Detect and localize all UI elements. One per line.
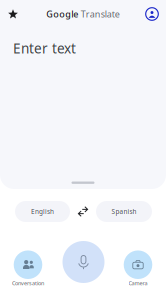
button[interactable]: Swap languages <box>70 201 96 222</box>
staticText: English <box>31 207 54 216</box>
staticText: Enter text <box>13 39 76 57</box>
button[interactable]: Conversation <box>0 249 56 289</box>
button[interactable]: Account <box>139 0 165 28</box>
staticText: Camera <box>128 279 147 287</box>
button[interactable]: Camera <box>110 249 166 289</box>
staticText: Conversation <box>12 279 44 287</box>
button[interactable]: Saved translations <box>0 0 26 28</box>
button[interactable]: Spanish <box>96 201 152 222</box>
button[interactable]: Speak <box>62 241 104 283</box>
button[interactable]: English <box>15 201 70 222</box>
staticText: Spanish <box>111 207 136 216</box>
staticText: Translate <box>81 8 120 20</box>
staticText: Google <box>46 8 78 20</box>
